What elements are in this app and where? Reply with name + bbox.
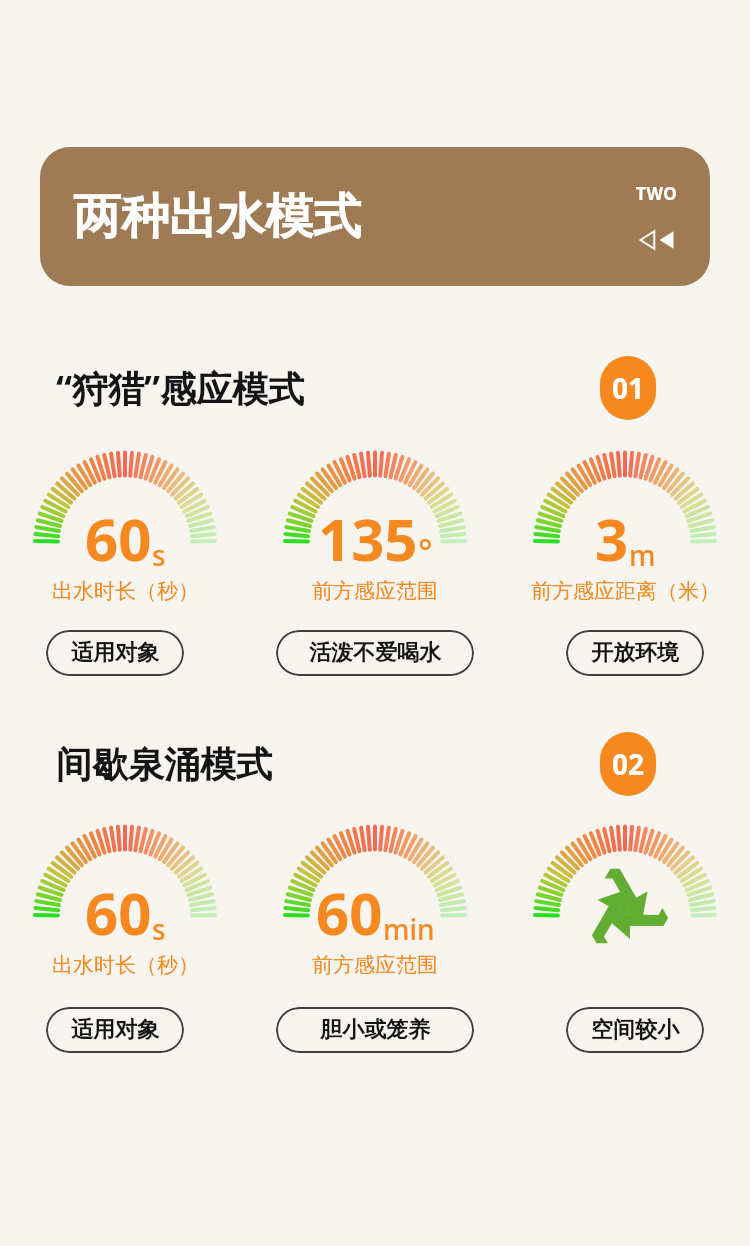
staticText: 01 [612,369,645,407]
staticText: 出水时长（秒） [52,952,199,978]
staticText: 前方感应范围 [312,578,438,604]
button[interactable]: 空间较小 [566,1007,704,1053]
staticText: 适用对象 [71,1016,159,1044]
button[interactable]: 01 [600,356,656,420]
staticText: 135 [318,499,418,578]
staticText: 3 [595,499,629,578]
staticText: 60 [85,499,152,578]
button[interactable]: 开放环境 [566,630,704,676]
staticText: s [152,536,166,574]
button[interactable]: 胆小或笼养 [276,1007,474,1053]
staticText: 出水时长（秒） [52,578,199,604]
staticText: m [629,536,656,574]
staticText: 适用对象 [71,639,159,667]
staticText: 胆小或笼养 [320,1016,430,1044]
button[interactable]: 活泼不爱喝水 [276,630,474,676]
staticText: 02 [612,745,645,783]
staticText: 开放环境 [591,639,679,667]
staticText: min [383,910,435,948]
staticText: s [152,910,166,948]
staticText: 60 [316,873,383,952]
other: Recycle [577,862,673,958]
staticText: ° [418,528,433,574]
staticText: 活泼不爱喝水 [309,639,441,667]
staticText: TWO [636,182,678,205]
staticText: 空间较小 [591,1016,679,1044]
staticText: 60 [85,873,152,952]
button[interactable]: 适用对象 [46,630,184,676]
staticText: “狩猎”感应模式 [56,364,305,413]
staticText: 前方感应范围 [312,952,438,978]
staticText: 间歇泉涌模式 [56,742,272,787]
button[interactable]: 两种出水模式 [40,147,710,286]
staticText: 两种出水模式 [73,187,361,247]
staticText: 前方感应距离（米） [531,578,720,604]
button[interactable]: 02 [600,732,656,796]
other: Previous [636,229,678,251]
button[interactable]: 适用对象 [46,1007,184,1053]
